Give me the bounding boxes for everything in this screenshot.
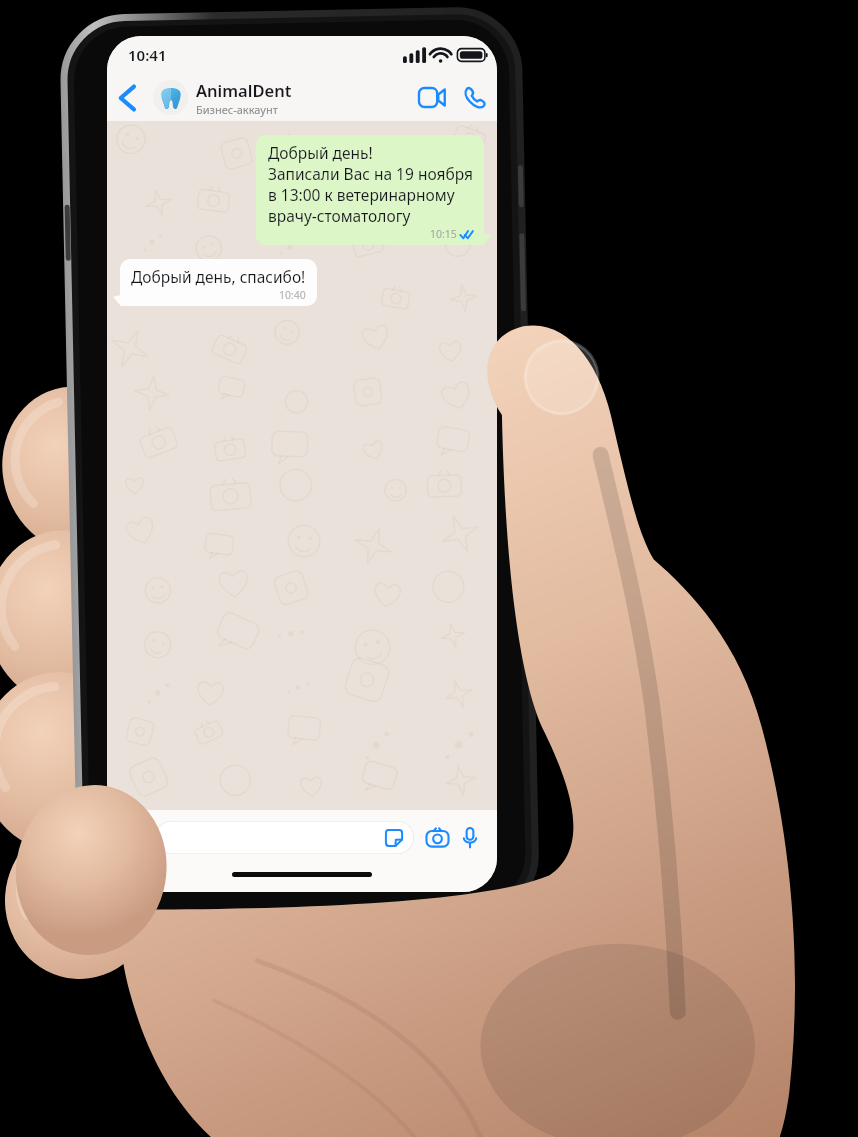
staticText: Добрый день, спасибо! [131,266,306,287]
staticText: Бизнес-аккаунт [196,102,278,117]
button[interactable]: AnimalDent [153,74,411,121]
staticText: в 13:00 к ветеринарному [268,184,455,205]
button[interactable]: Camera [420,820,454,854]
staticText: 10:41 [128,45,167,65]
button[interactable]: Stickers [382,826,406,850]
staticText: врачу-стоматологу [268,205,411,226]
button[interactable]: Stickers [155,821,414,854]
staticText: 10:15 [430,227,457,241]
staticText: 10:40 [279,288,306,302]
button[interactable]: Attach [118,821,150,853]
staticText: Записали Вас на 19 ноября [268,163,473,184]
staticText: AnimalDent [196,79,292,101]
button[interactable]: Добрый день, спасибо! [120,259,317,306]
button[interactable]: Video call [411,74,453,121]
button[interactable]: Back [107,74,147,121]
button[interactable]: Voice message [454,821,486,853]
button[interactable]: Voice call [453,74,497,121]
button[interactable]: Добрый день! [256,135,484,245]
staticText: Добрый день! [268,142,373,163]
